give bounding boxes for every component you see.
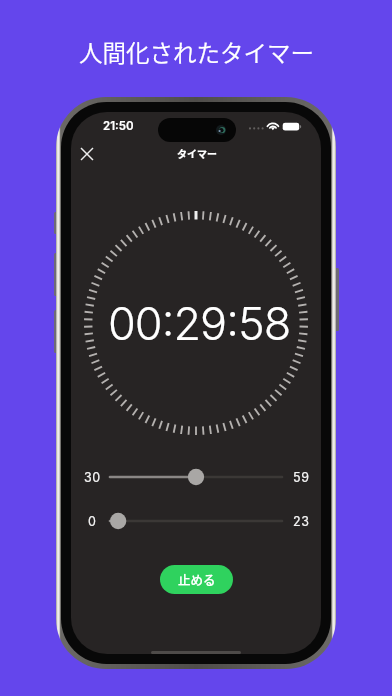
staticText: タイマー <box>177 146 217 160</box>
staticText: 21:50 <box>103 119 134 133</box>
staticText: 00:29:58 <box>108 296 291 350</box>
button[interactable]: Close <box>73 140 101 168</box>
button[interactable]: 止める <box>160 565 233 594</box>
staticText: 59 <box>293 470 310 485</box>
staticText: 人間化されたタイマー <box>79 35 314 69</box>
staticText: 止める <box>178 570 216 588</box>
staticText: 30 <box>84 470 101 485</box>
staticText: 23 <box>293 514 310 529</box>
staticText: 0 <box>88 514 97 529</box>
